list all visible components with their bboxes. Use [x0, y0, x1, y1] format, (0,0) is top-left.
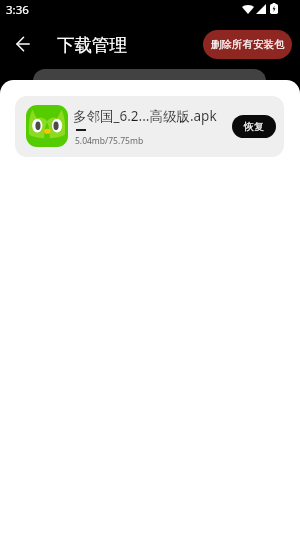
staticText: 多邻国_6.2...高级版.apk [73, 107, 217, 125]
staticText: 3:36 [6, 2, 29, 18]
staticText: 恢复 [244, 120, 264, 133]
button[interactable]: 恢复 [232, 115, 276, 138]
staticText: 5.04mb/75.75mb [75, 135, 144, 147]
button[interactable]: Back [6, 27, 40, 61]
button[interactable]: 多邻国_6.2...高级版.apk [15, 96, 284, 157]
staticText: 删除所有安装包 [211, 38, 285, 51]
button[interactable]: 删除所有安装包 [203, 30, 292, 59]
staticText: 下载管理 [57, 34, 127, 56]
